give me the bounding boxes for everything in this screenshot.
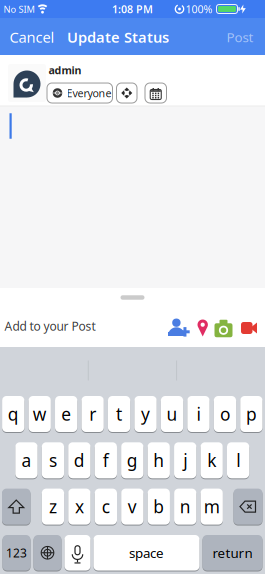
staticText: c (102, 495, 110, 518)
staticText: admin (48, 63, 81, 77)
staticText: j (183, 449, 187, 472)
staticText: w (33, 402, 47, 425)
button[interactable]: Dictate (64, 535, 90, 570)
staticText: 123 (6, 545, 27, 561)
button[interactable]: m (201, 489, 223, 525)
staticText: b (153, 495, 164, 518)
button[interactable]: f (95, 442, 117, 478)
staticText: f (103, 449, 109, 472)
staticText: i (196, 402, 200, 425)
staticText: 100% (185, 2, 212, 16)
button[interactable]: 123 (2, 535, 30, 570)
staticText: d (74, 449, 85, 472)
staticText: space (129, 544, 164, 562)
staticText: Add to your Post (4, 318, 95, 334)
staticText: p (246, 402, 257, 425)
staticText: z (49, 495, 57, 518)
button[interactable]: e (55, 396, 77, 432)
button[interactable]: s (42, 442, 64, 478)
button[interactable]: k (200, 442, 223, 478)
button[interactable]: j (174, 442, 196, 478)
button[interactable]: Photo (214, 319, 232, 338)
staticText: u (166, 402, 177, 425)
button[interactable]: b (148, 489, 170, 525)
button[interactable]: q (2, 396, 24, 432)
button[interactable]: h (148, 442, 170, 478)
staticText: n (180, 495, 191, 518)
staticText: q (8, 402, 19, 425)
button[interactable]: u (161, 396, 183, 432)
staticText: t (116, 402, 122, 425)
button[interactable]: Next keyboard (33, 535, 61, 570)
staticText: v (128, 495, 137, 518)
button[interactable]: a (15, 442, 38, 478)
staticText: r (89, 402, 96, 425)
button[interactable]: d (68, 442, 90, 478)
staticText: Post (226, 28, 253, 46)
button[interactable]: r (81, 396, 104, 432)
button[interactable]: Shift (2, 489, 30, 525)
button[interactable]: Check in (116, 83, 137, 103)
staticText: 1:08 PM (112, 2, 153, 16)
staticText: e (61, 402, 71, 425)
button[interactable]: Everyone (47, 83, 112, 103)
staticText: Everyone (66, 86, 111, 100)
staticText: Cancel (9, 27, 54, 47)
staticText: s (49, 449, 57, 472)
button[interactable]: x (68, 489, 91, 525)
button[interactable]: n (174, 489, 196, 525)
staticText: k (207, 449, 216, 472)
button[interactable]: g (121, 442, 143, 478)
staticText: Update Status (67, 27, 169, 47)
staticText: return (212, 544, 252, 562)
button[interactable]: w (29, 396, 51, 432)
staticText: l (236, 449, 240, 472)
button[interactable]: o (214, 396, 236, 432)
staticText: m (204, 495, 220, 518)
button[interactable]: Add location (197, 319, 209, 337)
button[interactable]: Video (241, 322, 257, 334)
button[interactable]: z (42, 489, 64, 525)
button[interactable]: Schedule (145, 83, 166, 103)
staticText: h (153, 449, 164, 472)
button[interactable]: p (240, 396, 262, 432)
button[interactable]: c (95, 489, 117, 525)
button[interactable]: return (202, 535, 262, 570)
staticText: a (21, 449, 31, 472)
button[interactable]: Post (218, 18, 262, 55)
button[interactable]: space (93, 535, 199, 570)
staticText: o (220, 402, 230, 425)
button[interactable]: y (134, 396, 157, 432)
staticText: x (75, 495, 84, 518)
button[interactable]: l (227, 442, 249, 478)
button[interactable]: i (187, 396, 210, 432)
button[interactable]: v (121, 489, 143, 525)
button[interactable]: Tag people (168, 318, 190, 338)
staticText: g (127, 449, 138, 472)
button[interactable]: Delete (233, 489, 262, 525)
button[interactable]: Cancel (7, 18, 57, 55)
staticText: No SIM (3, 3, 34, 15)
button[interactable]: t (108, 396, 130, 432)
staticText: y (141, 402, 150, 425)
